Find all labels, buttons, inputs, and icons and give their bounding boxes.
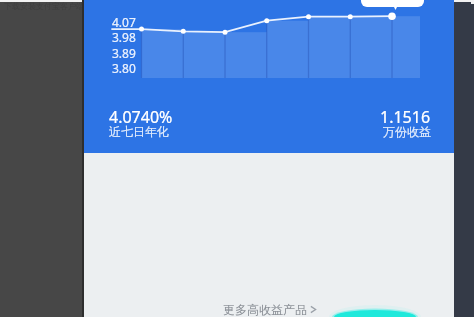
staticText: 更多高收益产品 — [223, 302, 307, 317]
staticText: 3.80 — [112, 60, 136, 76]
staticText: 万份收益 — [383, 124, 431, 139]
staticText: 近七日年化 — [109, 124, 169, 139]
staticText: 下载安装支付宝客户端 — [4, 1, 84, 11]
staticText: 4.07 — [112, 14, 136, 30]
button[interactable]: 更多高收益产品 — [217, 299, 323, 317]
staticText: 3.89 — [112, 45, 136, 61]
staticText: 1.1516 — [380, 106, 431, 128]
staticText: 3.98 — [112, 29, 136, 45]
staticText: 4.0740% — [109, 106, 173, 128]
